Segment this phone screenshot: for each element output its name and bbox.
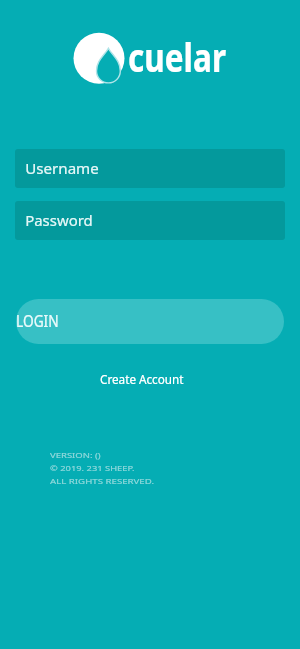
button[interactable] bbox=[16, 299, 284, 344]
button[interactable] bbox=[100, 370, 200, 388]
button[interactable] bbox=[15, 149, 285, 188]
button[interactable] bbox=[15, 201, 285, 240]
other: Cuelar logo bbox=[70, 30, 128, 88]
